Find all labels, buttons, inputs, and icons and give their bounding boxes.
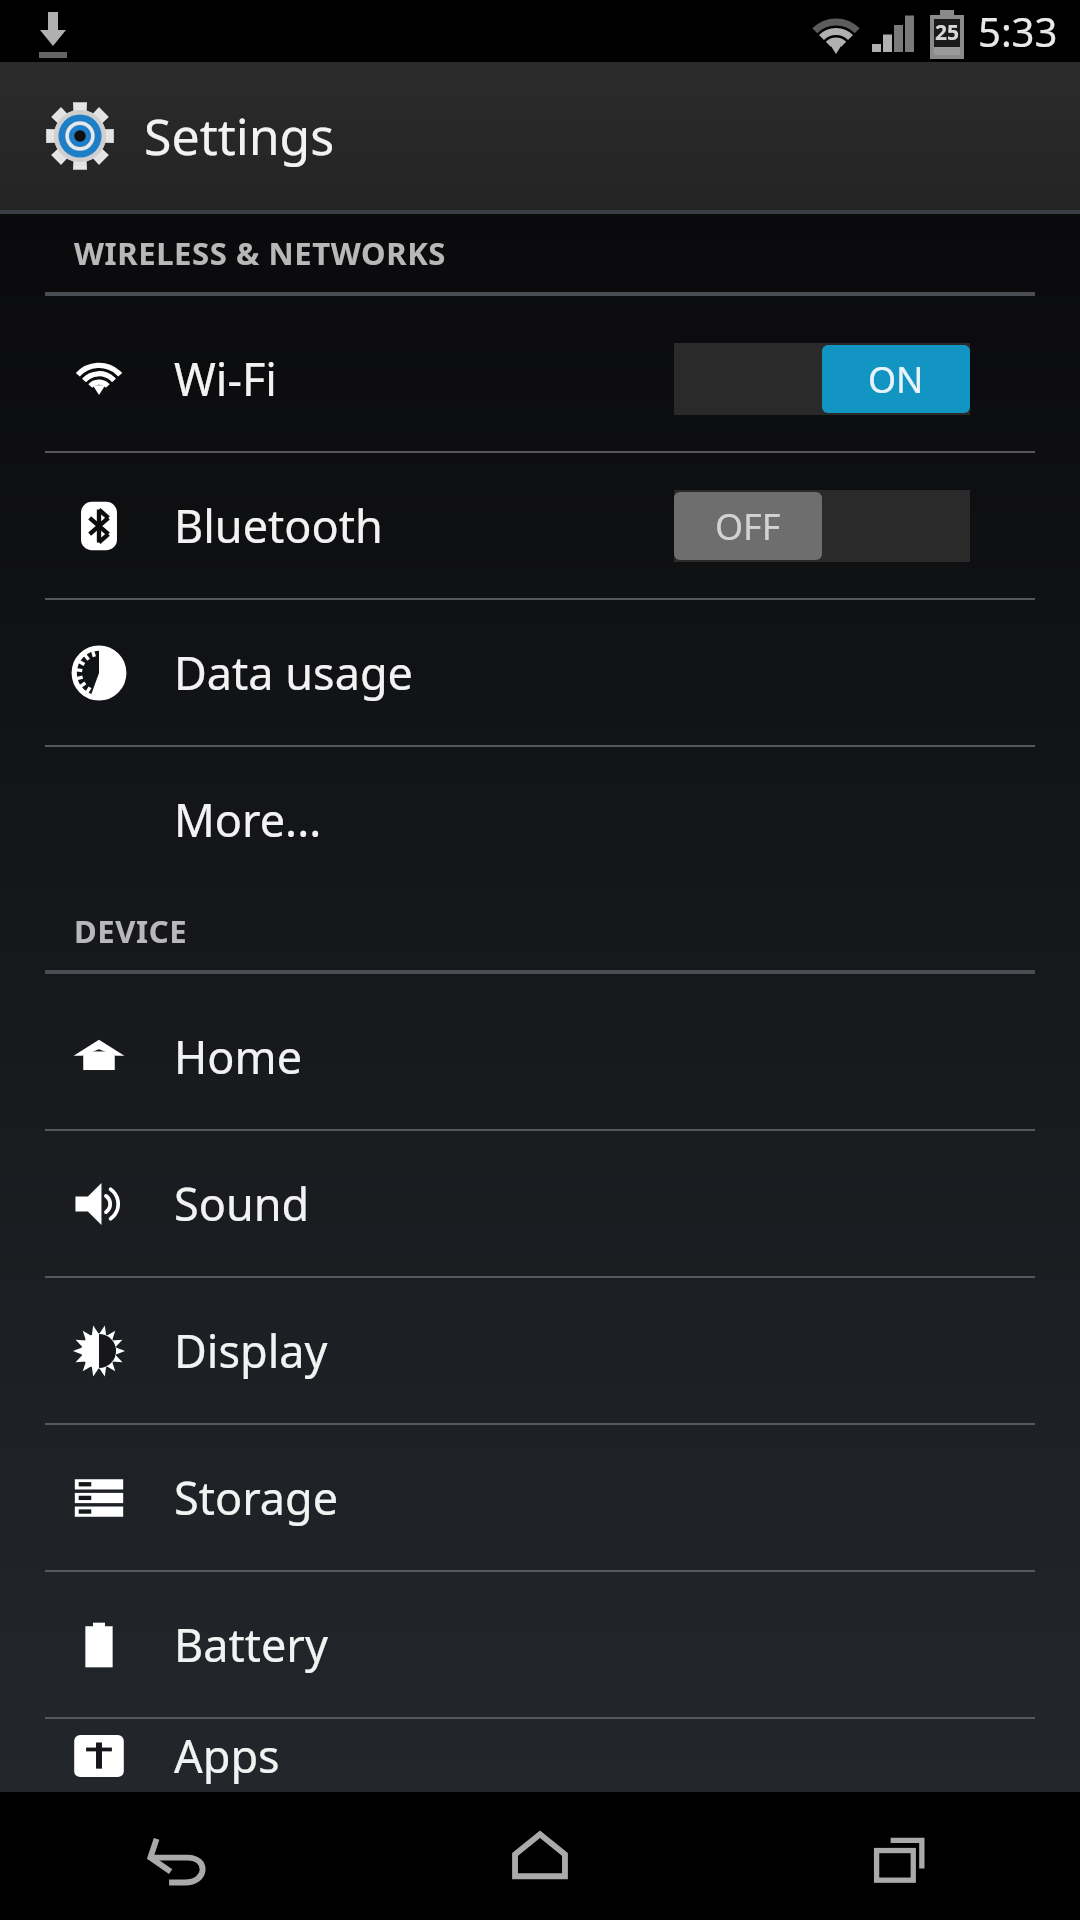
staticText: Bluetooth [174, 495, 383, 556]
staticText: More... [174, 789, 322, 850]
button[interactable]: Home [360, 1792, 720, 1920]
button[interactable]: OFF [674, 490, 970, 562]
staticText: Storage [174, 1467, 339, 1528]
staticText: Battery [174, 1614, 328, 1675]
button[interactable]: Wi-Fi [0, 306, 1080, 451]
staticText: Display [174, 1320, 328, 1381]
staticText: Settings [144, 102, 335, 170]
button[interactable]: Bluetooth [0, 453, 1080, 598]
button[interactable]: Sound [0, 1131, 1080, 1276]
staticText: Data usage [174, 642, 413, 703]
staticText: Home [174, 1026, 303, 1087]
button[interactable]: Storage [0, 1425, 1080, 1570]
staticText: DEVICE [74, 910, 188, 952]
button[interactable]: Data usage [0, 600, 1080, 745]
button[interactable]: Home [0, 984, 1080, 1129]
button[interactable]: More... [0, 747, 1080, 892]
button[interactable]: Apps [0, 1719, 1080, 1792]
staticText: Wi-Fi [174, 348, 277, 409]
button[interactable]: Back [0, 1792, 360, 1920]
staticText: Apps [174, 1725, 280, 1786]
button[interactable]: Recent apps [720, 1792, 1080, 1920]
staticText: 25 [934, 18, 960, 47]
button[interactable]: Display [0, 1278, 1080, 1423]
button[interactable]: ON [674, 343, 970, 415]
staticText: OFF [715, 502, 781, 551]
staticText: WIRELESS & NETWORKS [74, 232, 446, 274]
staticText: 5:33 [978, 4, 1058, 58]
button[interactable]: Battery [0, 1572, 1080, 1717]
staticText: Sound [174, 1173, 310, 1234]
button[interactable]: Settings [0, 62, 1080, 210]
staticText: ON [868, 355, 924, 404]
